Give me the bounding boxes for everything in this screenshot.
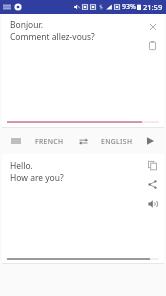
button[interactable]: Share	[144, 176, 161, 193]
staticText: Bonjour.	[10, 19, 43, 31]
button[interactable]: Play translation	[139, 130, 161, 152]
button[interactable]: Menu	[5, 130, 27, 152]
staticText: FRENCH	[35, 137, 64, 146]
staticText: Hello.	[10, 160, 33, 172]
button[interactable]: Listen	[144, 195, 161, 212]
staticText: 93%	[122, 2, 136, 12]
button[interactable]: Paste	[144, 37, 161, 54]
button[interactable]: Swap languages	[72, 130, 94, 152]
staticText: Comment allez-vous?	[10, 31, 95, 43]
staticText: ENGLISH	[101, 137, 133, 146]
staticText: How are you?	[10, 172, 64, 184]
button[interactable]: Clear text	[144, 18, 161, 35]
button[interactable]: FRENCH	[27, 128, 72, 154]
staticText: 21:59	[143, 2, 163, 12]
button[interactable]: ENGLISH	[94, 128, 139, 154]
button[interactable]: Copy	[144, 157, 161, 174]
